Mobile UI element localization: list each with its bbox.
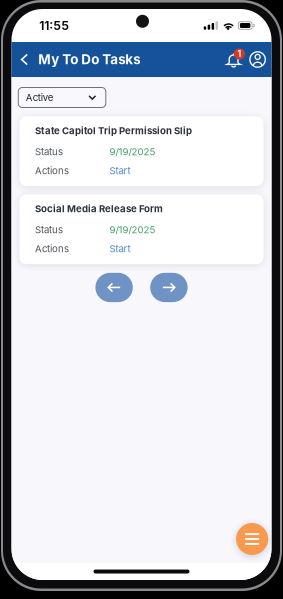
button[interactable]: Next page xyxy=(150,273,188,302)
staticText: 1 xyxy=(237,48,241,59)
staticText: Actions xyxy=(35,165,69,176)
button[interactable]: Account xyxy=(247,45,268,73)
staticText: Actions xyxy=(35,243,69,254)
staticText: 9/19/2025 xyxy=(109,224,155,235)
button[interactable]: Back xyxy=(17,42,32,77)
staticText: Start xyxy=(109,243,130,254)
staticText: Social Media Release Form xyxy=(35,203,163,214)
button[interactable]: Filter: Active xyxy=(18,87,106,107)
staticText: State Capitol Trip Permission Slip xyxy=(35,125,192,136)
button[interactable]: Menu xyxy=(236,523,268,555)
button[interactable]: Start xyxy=(109,243,130,254)
staticText: Active xyxy=(26,92,54,103)
staticText: My To Do Tasks xyxy=(38,51,140,67)
staticText: Status xyxy=(35,146,63,157)
staticText: Start xyxy=(109,165,130,176)
button[interactable]: Previous page xyxy=(95,273,133,302)
staticText: 9/19/2025 xyxy=(109,146,155,157)
staticText: 11:55 xyxy=(39,18,69,33)
button[interactable]: Notifications xyxy=(224,45,247,73)
staticText: Status xyxy=(35,224,63,235)
button[interactable]: Start xyxy=(109,165,130,176)
